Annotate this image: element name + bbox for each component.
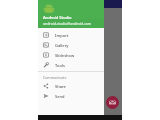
button[interactable]: Compose email [106, 96, 119, 109]
button[interactable]: Import [38, 30, 104, 40]
staticText: Slideshow [55, 53, 75, 58]
staticText: Android Studio [43, 15, 72, 20]
button[interactable]: Tools [38, 60, 104, 70]
button[interactable]: Send [38, 91, 104, 101]
button[interactable]: Android Studio [38, 0, 104, 28]
button[interactable]: Slideshow [38, 50, 104, 60]
staticText: android.studio@android.com [43, 21, 92, 25]
staticText: Communicate [43, 75, 67, 80]
staticText: Gallery [55, 43, 69, 48]
staticText: Import [55, 33, 69, 38]
button[interactable]: Share [38, 81, 104, 91]
button[interactable]: Gallery [38, 40, 104, 50]
staticText: Send [55, 94, 65, 99]
staticText: Tools [55, 63, 65, 68]
staticText: Share [55, 84, 66, 89]
